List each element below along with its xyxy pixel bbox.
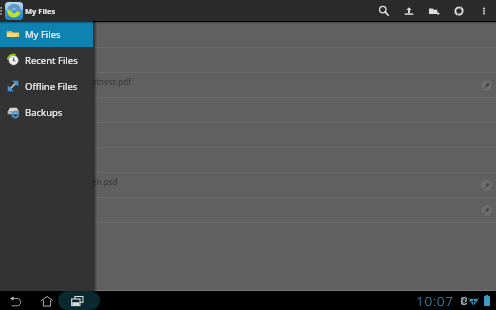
staticText: Backups — [25, 106, 63, 119]
staticText: My Files — [25, 6, 56, 16]
button[interactable]: Home — [33, 291, 60, 310]
staticText: My Files — [25, 28, 61, 41]
button[interactable] — [0, 23, 496, 48]
button[interactable]: Back — [2, 291, 29, 310]
button[interactable]: Open navigation drawer — [0, 0, 5, 21]
button[interactable] — [0, 123, 496, 148]
button[interactable]: My Files — [0, 21, 93, 47]
button[interactable] — [0, 48, 496, 73]
staticText: Splash screen.psd — [50, 176, 118, 187]
button[interactable]: More options — [471, 0, 496, 21]
staticText: Offline Files — [25, 80, 78, 93]
button[interactable]: Recent apps — [64, 291, 91, 310]
button[interactable]: Backups — [0, 99, 93, 125]
button[interactable] — [0, 98, 496, 123]
staticText: Recent Files — [25, 54, 78, 67]
button[interactable] — [0, 198, 496, 223]
button[interactable]: Project Greatness.pdf — [0, 73, 496, 98]
button[interactable]: New folder — [421, 0, 446, 21]
button[interactable]: Recent Files — [0, 47, 93, 73]
button[interactable]: Splash screen.psd — [0, 173, 496, 198]
button[interactable] — [0, 148, 496, 173]
button[interactable]: Offline Files — [0, 73, 93, 99]
button[interactable]: Search — [371, 0, 396, 21]
staticText: Project Greatness.pdf — [50, 76, 131, 87]
staticText: 10:07 — [416, 292, 454, 310]
button[interactable]: Upload — [396, 0, 421, 21]
button[interactable]: Refresh — [446, 0, 471, 21]
